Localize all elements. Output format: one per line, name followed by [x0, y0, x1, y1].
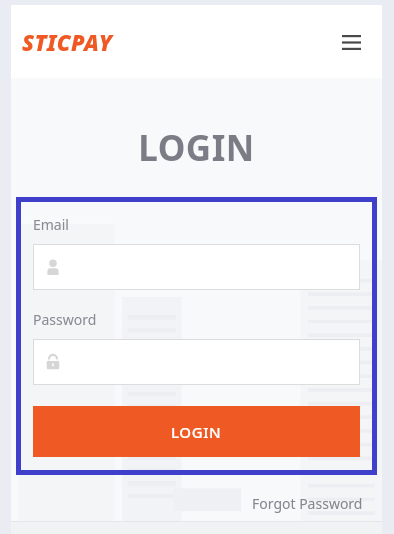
- staticText: LOGIN: [171, 422, 222, 442]
- button[interactable]: Forgot Password: [250, 491, 365, 516]
- button[interactable]: Open menu: [336, 27, 366, 57]
- button[interactable]: LOGIN: [33, 406, 360, 457]
- staticText: LOGIN: [11, 124, 382, 172]
- staticText: STICPAY: [22, 27, 113, 57]
- staticText: Forgot Password: [252, 494, 363, 513]
- button[interactable]: STICPAY: [22, 27, 113, 57]
- button[interactable]: Password input: [33, 339, 360, 385]
- button[interactable]: Email input: [33, 244, 360, 290]
- staticText: Password: [33, 310, 97, 329]
- staticText: Email: [33, 215, 69, 234]
